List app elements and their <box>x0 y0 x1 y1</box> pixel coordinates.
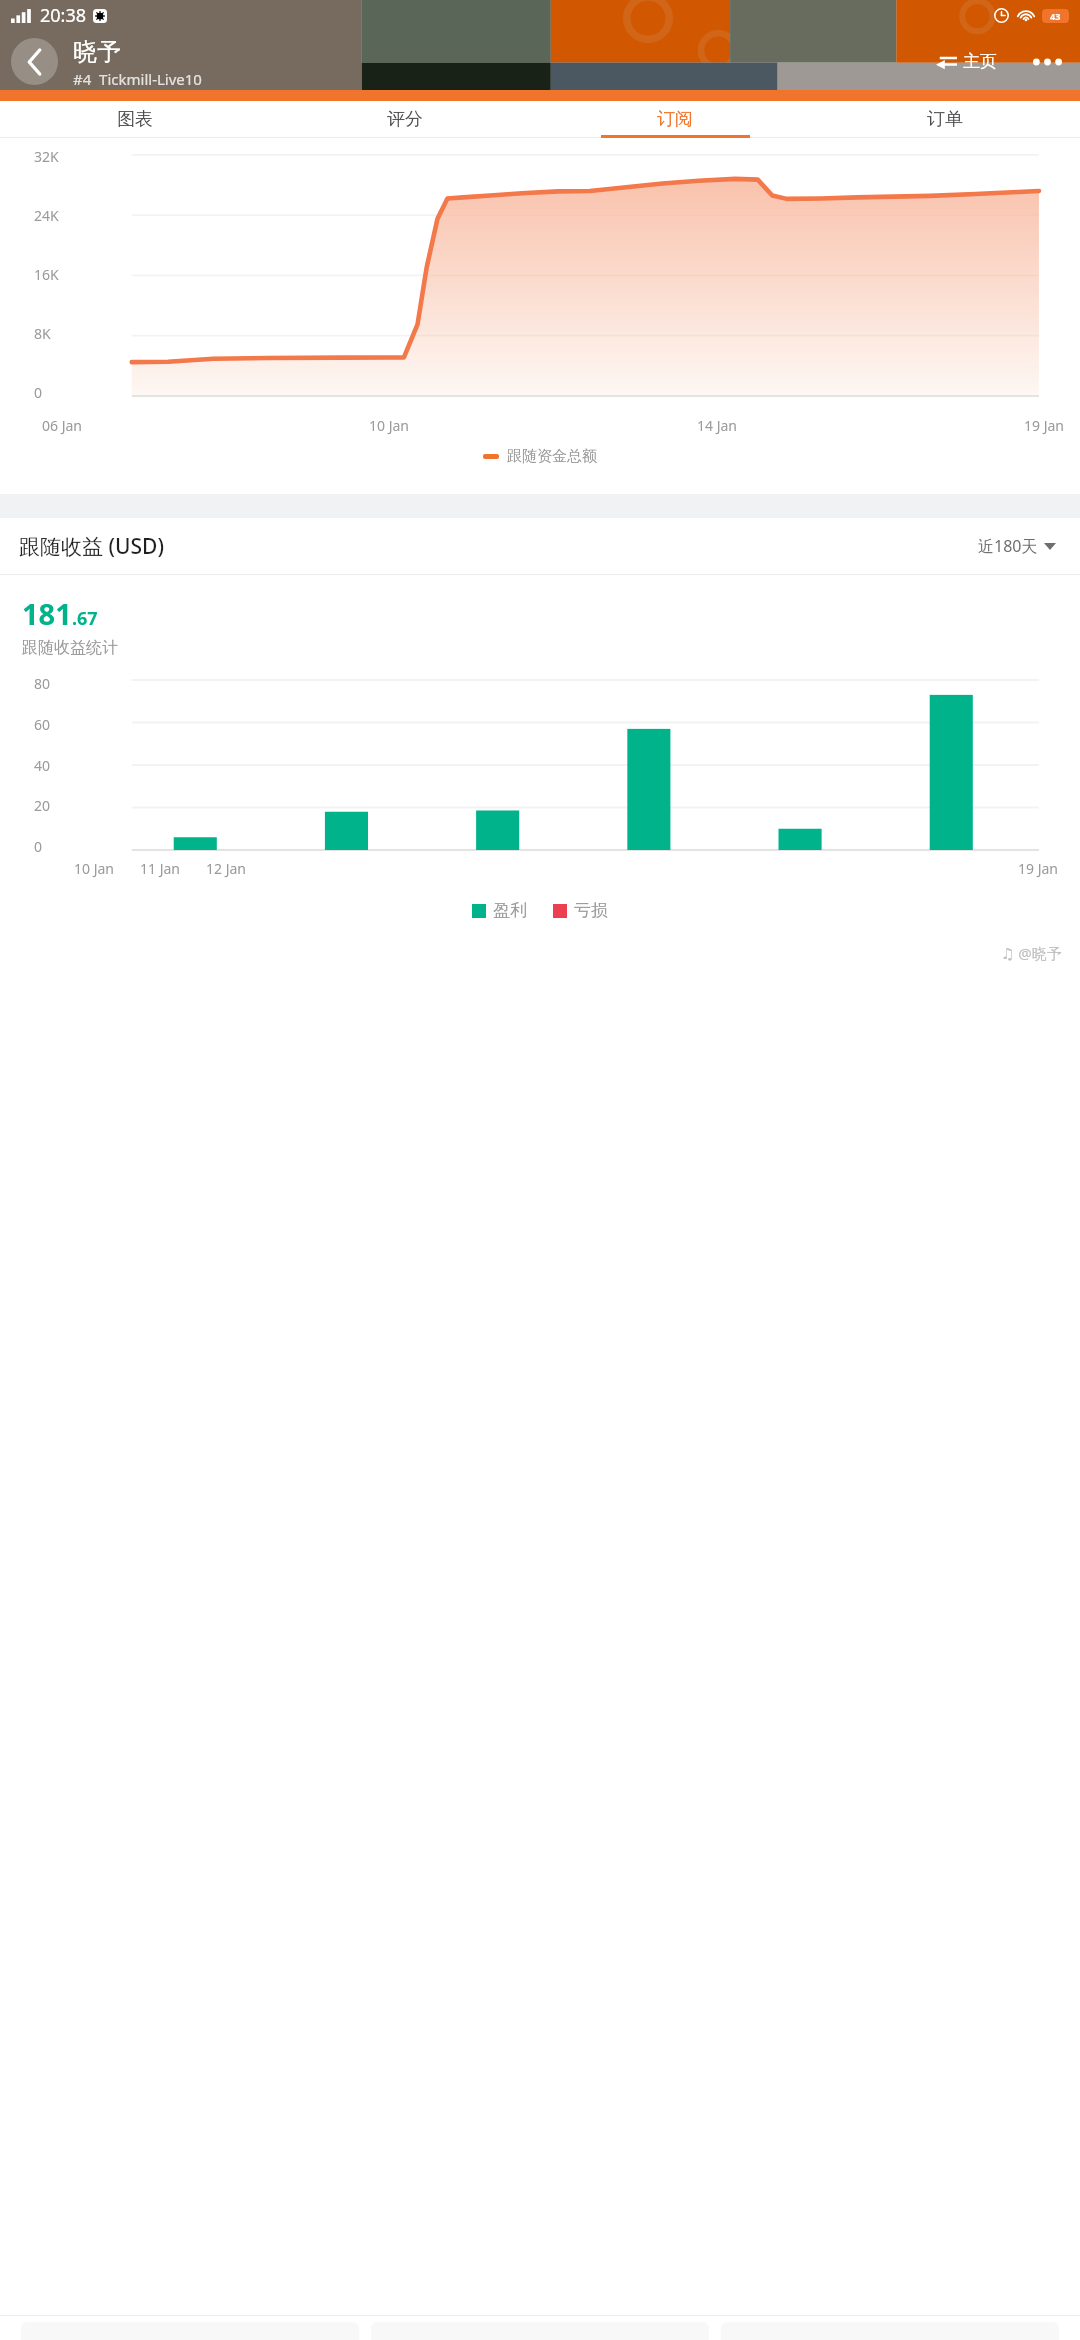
staticText: 跟随资金总额 <box>507 447 597 466</box>
staticText: 181 <box>22 594 72 633</box>
staticText: 20 <box>34 796 51 815</box>
button[interactable]: 订阅 <box>540 101 810 138</box>
staticText: 近180天 <box>978 535 1038 557</box>
staticText: 19 Jan <box>1024 416 1064 435</box>
staticText: 评分 <box>387 108 423 131</box>
staticText: 60 <box>34 715 51 734</box>
staticText: 0 <box>34 383 43 402</box>
staticText: 晓予 <box>73 37 121 67</box>
staticText: 11 Jan <box>140 859 180 878</box>
staticText: 图表 <box>117 108 153 131</box>
staticText: ♫ @晓予 <box>1001 943 1062 963</box>
button[interactable]: 近180天 <box>973 530 1061 562</box>
staticText: 06 Jan <box>42 416 82 435</box>
staticText: 跟随收益 (USD) <box>19 532 164 561</box>
staticText: 0 <box>34 837 43 856</box>
staticText: 32K <box>34 147 59 166</box>
staticText: 14 Jan <box>697 416 737 435</box>
staticText: 24K <box>34 206 59 225</box>
staticText: 43 <box>1050 10 1061 22</box>
staticText: 10 Jan <box>74 859 114 878</box>
staticText: #4 Tickmill-Live10 <box>73 69 202 89</box>
staticText: 80 <box>34 674 51 693</box>
staticText: 10 Jan <box>369 416 409 435</box>
staticText: 订阅 <box>657 108 693 131</box>
button[interactable]: Back <box>11 38 58 85</box>
button[interactable]: 图表 <box>0 101 270 138</box>
button[interactable]: 评分 <box>270 101 540 138</box>
staticText: 12 Jan <box>206 859 246 878</box>
staticText: .67 <box>72 606 98 631</box>
staticText: 8K <box>34 324 51 343</box>
button[interactable]: 主页 <box>929 46 1004 77</box>
staticText: 亏损 <box>574 900 608 921</box>
staticText: 20:38 <box>40 3 87 28</box>
staticText: 订单 <box>927 108 963 131</box>
staticText: 16K <box>34 265 59 284</box>
staticText: 跟随收益统计 <box>22 638 118 658</box>
staticText: 主页 <box>963 51 997 72</box>
staticText: 盈利 <box>493 900 527 921</box>
staticText: 19 Jan <box>1018 859 1058 878</box>
staticText: 40 <box>34 756 51 775</box>
button[interactable]: More options <box>1024 39 1070 85</box>
button[interactable]: 订单 <box>810 101 1080 138</box>
